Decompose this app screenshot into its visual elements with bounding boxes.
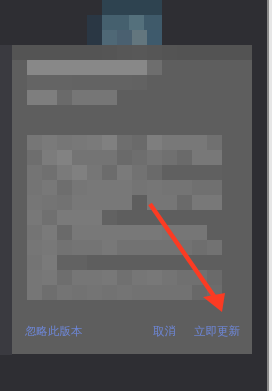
- staticText: 忽略此版本: [25, 324, 83, 338]
- staticText: 立即更新: [194, 324, 240, 338]
- button[interactable]: 立即更新: [190, 320, 244, 342]
- button[interactable]: 取消: [146, 320, 182, 342]
- button[interactable]: 忽略此版本: [18, 320, 90, 342]
- staticText: 取消: [153, 324, 176, 338]
